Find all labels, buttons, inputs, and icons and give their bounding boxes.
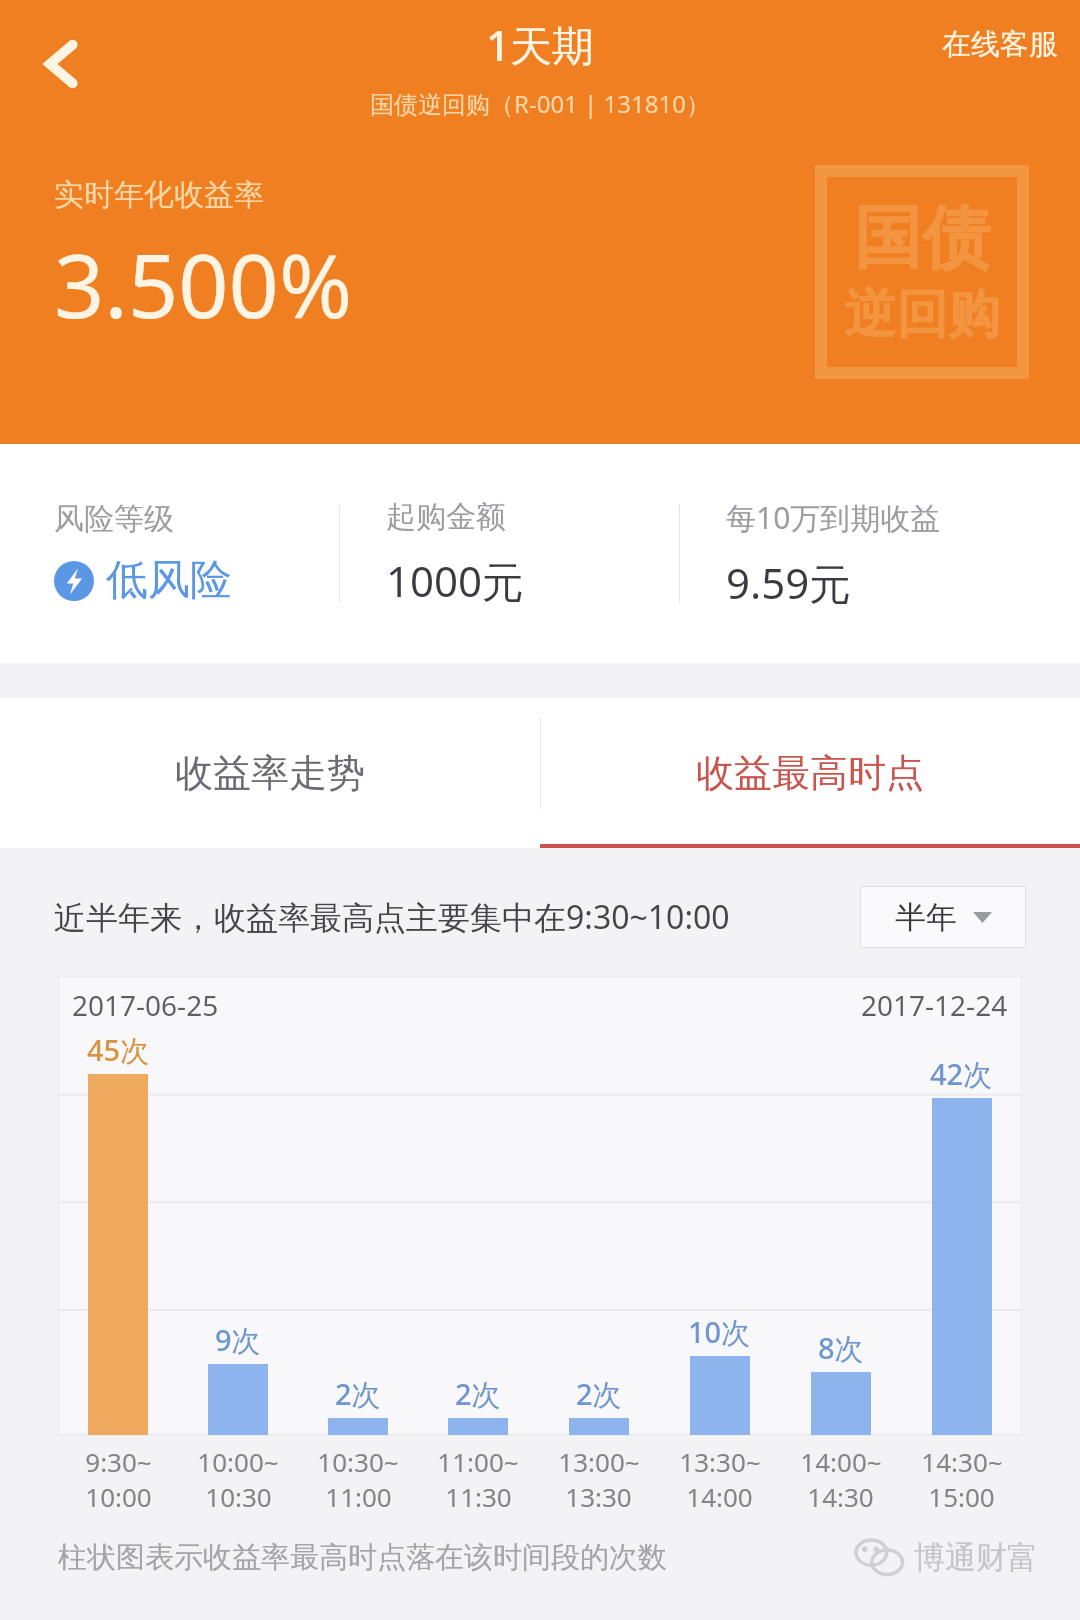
staticText: 9:30~	[85, 1444, 152, 1479]
staticText: 起购金额	[386, 498, 506, 536]
staticText: 13:30	[565, 1479, 632, 1514]
staticText: 10次	[688, 1312, 751, 1352]
staticText: 9次	[215, 1320, 261, 1360]
staticText: 10:00~	[197, 1444, 279, 1479]
staticText: 柱状图表示收益率最高时点落在该时间段的次数	[58, 1539, 667, 1576]
staticText: 13:30~	[679, 1444, 761, 1479]
staticText: 博通财富	[914, 1538, 1038, 1577]
staticText: 11:00	[325, 1479, 392, 1514]
button[interactable]: 收益最高时点	[540, 698, 1080, 848]
staticText: 3.500%	[54, 224, 353, 344]
staticText: 每10万到期收益	[726, 497, 941, 538]
staticText: 10:00	[85, 1479, 152, 1514]
staticText: 42次	[930, 1054, 993, 1094]
staticText: 45次	[87, 1030, 150, 1070]
staticText: 低风险	[106, 554, 232, 607]
staticText: 11:30	[445, 1479, 512, 1514]
staticText: 半年	[895, 898, 957, 937]
staticText: 收益最高时点	[696, 749, 924, 797]
button[interactable]: Back	[14, 16, 110, 112]
staticText: 15:00	[928, 1479, 995, 1514]
button[interactable]: 在线客服	[942, 26, 1058, 63]
staticText: 1天期	[486, 16, 595, 73]
staticText: 逆回购	[844, 282, 1000, 348]
staticText: 8次	[818, 1328, 864, 1368]
staticText: 实时年化收益率	[54, 176, 264, 214]
staticText: 1000元	[386, 552, 525, 609]
staticText: 在线客服	[942, 26, 1058, 63]
staticText: 14:00~	[800, 1444, 882, 1479]
staticText: 2次	[576, 1374, 622, 1414]
staticText: 近半年来，收益率最高点主要集中在9:30~10:00	[54, 895, 730, 939]
staticText: 10:30~	[317, 1444, 399, 1479]
staticText: 10:30	[205, 1479, 272, 1514]
staticText: 14:00	[686, 1479, 753, 1514]
staticText: 13:00~	[558, 1444, 640, 1479]
button[interactable]: 收益率走势	[0, 698, 540, 848]
staticText: 2次	[455, 1374, 501, 1414]
staticText: 14:30	[807, 1479, 874, 1514]
staticText: 11:00~	[437, 1444, 519, 1479]
staticText: 2次	[335, 1374, 381, 1414]
staticText: 2017-12-24	[861, 986, 1008, 1024]
staticText: 风险等级	[54, 500, 174, 538]
staticText: 2017-06-25	[72, 986, 219, 1024]
staticText: 收益率走势	[175, 749, 365, 797]
staticText: 国债逆回购（R-001 | 131810）	[370, 87, 710, 120]
staticText: 国债	[854, 196, 990, 282]
staticText: 9.59元	[726, 554, 852, 611]
button[interactable]: 半年	[860, 886, 1026, 948]
staticText: 14:30~	[921, 1444, 1003, 1479]
